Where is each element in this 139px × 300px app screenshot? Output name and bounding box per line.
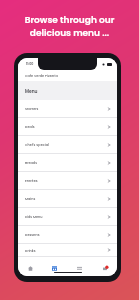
staticText: Browse through our delicious menu ...	[0, 14, 139, 39]
button[interactable]: Drinks	[18, 244, 117, 256]
button[interactable]: Deals	[18, 118, 117, 135]
staticText: Drinks	[25, 248, 36, 253]
button[interactable]: Starters	[18, 100, 117, 117]
button[interactable]: Chef's Special	[18, 136, 117, 153]
button[interactable]: Entrées	[18, 172, 117, 189]
button[interactable]: Home	[18, 257, 42, 272]
button[interactable]: Desserts	[18, 226, 117, 243]
staticText: Cafe Verde Pizzeria	[25, 73, 58, 78]
staticText: Kids Menu	[25, 214, 43, 219]
button[interactable]: Menu	[42, 257, 67, 272]
staticText: Mains	[25, 196, 36, 201]
staticText: Deals	[25, 124, 35, 129]
button[interactable]: Mains	[18, 190, 117, 207]
staticText: Starters	[25, 106, 39, 111]
button[interactable]: Kids Menu	[18, 208, 117, 225]
staticText: Entrées	[25, 178, 38, 183]
staticText: Desserts	[25, 232, 40, 237]
staticText: Chef's Special	[25, 142, 49, 147]
button[interactable]: Breads	[18, 154, 117, 171]
button[interactable]: Orders	[67, 257, 92, 272]
button[interactable]: Cart	[92, 257, 117, 272]
staticText: Menu	[25, 88, 38, 94]
staticText: 11:00	[26, 62, 34, 66]
staticText: Breads	[25, 160, 37, 165]
